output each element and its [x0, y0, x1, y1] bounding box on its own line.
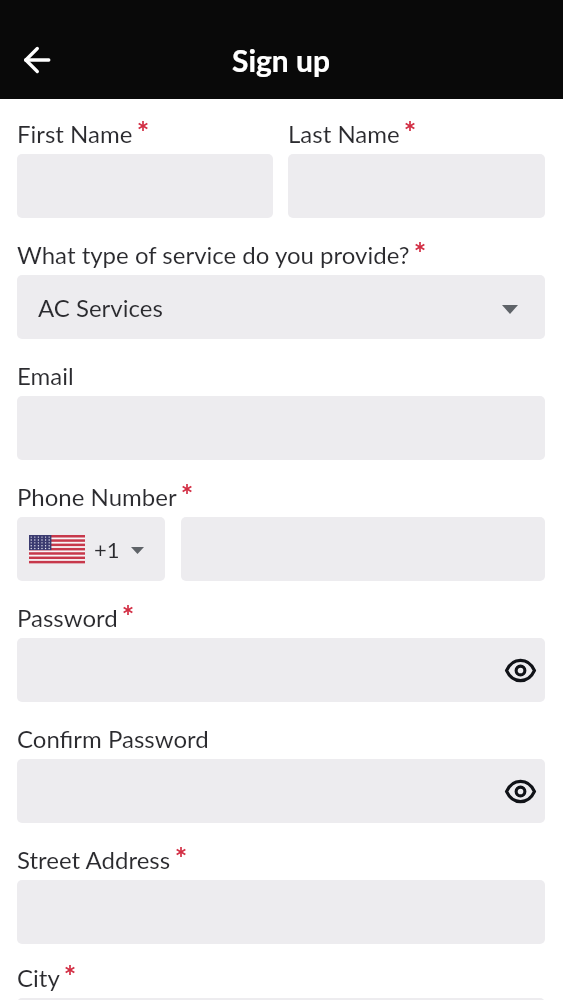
staticText: Last Name	[288, 119, 400, 148]
staticText: Password	[17, 603, 118, 632]
button[interactable]: +1	[17, 517, 165, 581]
staticText: Sign up	[232, 42, 331, 78]
button[interactable]: Show password	[500, 650, 540, 690]
button[interactable]: AC Services	[17, 275, 545, 339]
button[interactable]: Show password	[17, 759, 545, 823]
button[interactable]: Show password	[500, 771, 540, 811]
staticText: First Name	[17, 119, 133, 148]
staticText: AC Services	[38, 293, 163, 322]
button[interactable]: Show password	[17, 638, 545, 702]
staticText: +1	[94, 536, 120, 562]
staticText: Street Address	[17, 845, 171, 874]
staticText: Email	[17, 361, 74, 390]
staticText: City	[17, 963, 60, 992]
staticText: Phone Number	[17, 482, 177, 511]
staticText: What type of service do you provide?	[17, 240, 410, 269]
staticText: Confirm Password	[17, 724, 209, 753]
button[interactable]: Back	[13, 36, 61, 84]
